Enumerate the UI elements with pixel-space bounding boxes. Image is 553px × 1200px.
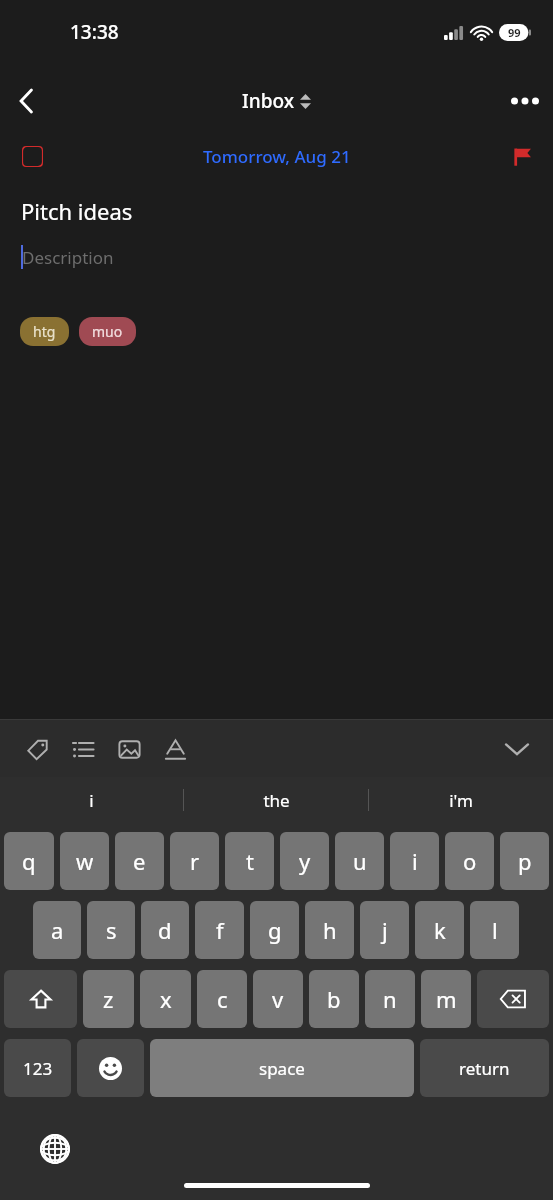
button[interactable]: o: [445, 832, 494, 890]
staticText: u: [353, 846, 367, 876]
button[interactable]: q: [4, 832, 54, 890]
staticText: k: [434, 915, 446, 945]
button[interactable]: Checklist: [60, 726, 106, 772]
staticText: 123: [23, 1057, 53, 1080]
button[interactable]: Priority flag: [497, 132, 545, 180]
staticText: 99: [508, 25, 521, 40]
button[interactable]: z: [83, 970, 134, 1028]
button[interactable]: y: [280, 832, 329, 890]
button[interactable]: Complete task: [8, 132, 56, 180]
button[interactable]: h: [305, 901, 354, 959]
button[interactable]: the: [184, 777, 368, 823]
staticText: r: [190, 846, 200, 876]
staticText: the: [263, 789, 290, 812]
staticText: v: [272, 984, 284, 1014]
button[interactable]: return: [420, 1039, 549, 1097]
staticText: f: [216, 915, 224, 945]
button[interactable]: g: [250, 901, 299, 959]
button[interactable]: p: [500, 832, 549, 890]
button[interactable]: m: [421, 970, 471, 1028]
staticText: y: [299, 846, 311, 876]
button[interactable]: More options: [497, 73, 553, 129]
button[interactable]: v: [253, 970, 303, 1028]
staticText: i: [89, 789, 94, 812]
button[interactable]: j: [360, 901, 409, 959]
button[interactable]: a: [33, 901, 81, 959]
staticText: z: [103, 984, 114, 1014]
button[interactable]: Back: [0, 75, 52, 127]
button[interactable]: k: [415, 901, 464, 959]
staticText: h: [323, 915, 337, 945]
staticText: c: [217, 984, 228, 1014]
button[interactable]: i'm: [369, 777, 553, 823]
button[interactable]: e: [115, 832, 164, 890]
button[interactable]: Description: [22, 246, 114, 269]
button[interactable]: x: [140, 970, 191, 1028]
staticText: x: [160, 984, 172, 1014]
button[interactable]: space: [150, 1039, 414, 1097]
staticText: i'm: [449, 789, 473, 812]
staticText: n: [383, 984, 397, 1014]
button[interactable]: Emoji: [77, 1039, 144, 1097]
staticText: return: [459, 1057, 510, 1080]
button[interactable]: Change language: [32, 1126, 78, 1172]
staticText: muo: [92, 322, 123, 341]
button[interactable]: r: [170, 832, 219, 890]
staticText: p: [518, 846, 532, 876]
button[interactable]: muo: [79, 317, 136, 346]
button[interactable]: c: [197, 970, 247, 1028]
button[interactable]: 123: [4, 1039, 71, 1097]
staticText: htg: [33, 322, 56, 341]
staticText: t: [246, 846, 254, 876]
staticText: d: [158, 915, 172, 945]
staticText: m: [436, 984, 457, 1014]
staticText: s: [106, 915, 117, 945]
button[interactable]: Insert image: [106, 726, 152, 772]
button[interactable]: i: [390, 832, 439, 890]
button[interactable]: w: [60, 832, 109, 890]
button[interactable]: Inbox: [242, 88, 311, 114]
button[interactable]: s: [87, 901, 135, 959]
staticText: l: [492, 915, 498, 945]
button[interactable]: Add label: [14, 726, 60, 772]
button[interactable]: t: [225, 832, 274, 890]
button[interactable]: u: [335, 832, 384, 890]
staticText: Pitch ideas: [21, 196, 133, 226]
button[interactable]: Hide keyboard: [495, 727, 539, 771]
button[interactable]: Tomorrow, Aug 21: [203, 145, 351, 168]
button[interactable]: l: [470, 901, 519, 959]
button[interactable]: f: [195, 901, 244, 959]
button[interactable]: d: [141, 901, 189, 959]
button[interactable]: b: [309, 970, 359, 1028]
staticText: q: [22, 846, 36, 876]
staticText: i: [412, 846, 418, 876]
staticText: o: [463, 846, 477, 876]
staticText: space: [259, 1057, 305, 1080]
button[interactable]: n: [365, 970, 415, 1028]
staticText: g: [268, 915, 282, 945]
staticText: j: [382, 915, 388, 945]
button[interactable]: htg: [20, 317, 69, 346]
staticText: w: [76, 846, 94, 876]
button[interactable]: i: [0, 777, 183, 823]
button[interactable]: Text format: [152, 726, 198, 772]
staticText: e: [133, 846, 146, 876]
staticText: 13:38: [70, 19, 119, 45]
staticText: a: [51, 915, 64, 945]
staticText: Inbox: [242, 88, 294, 114]
button[interactable]: Shift: [4, 970, 77, 1028]
staticText: b: [327, 984, 341, 1014]
button[interactable]: Backspace: [477, 970, 549, 1028]
